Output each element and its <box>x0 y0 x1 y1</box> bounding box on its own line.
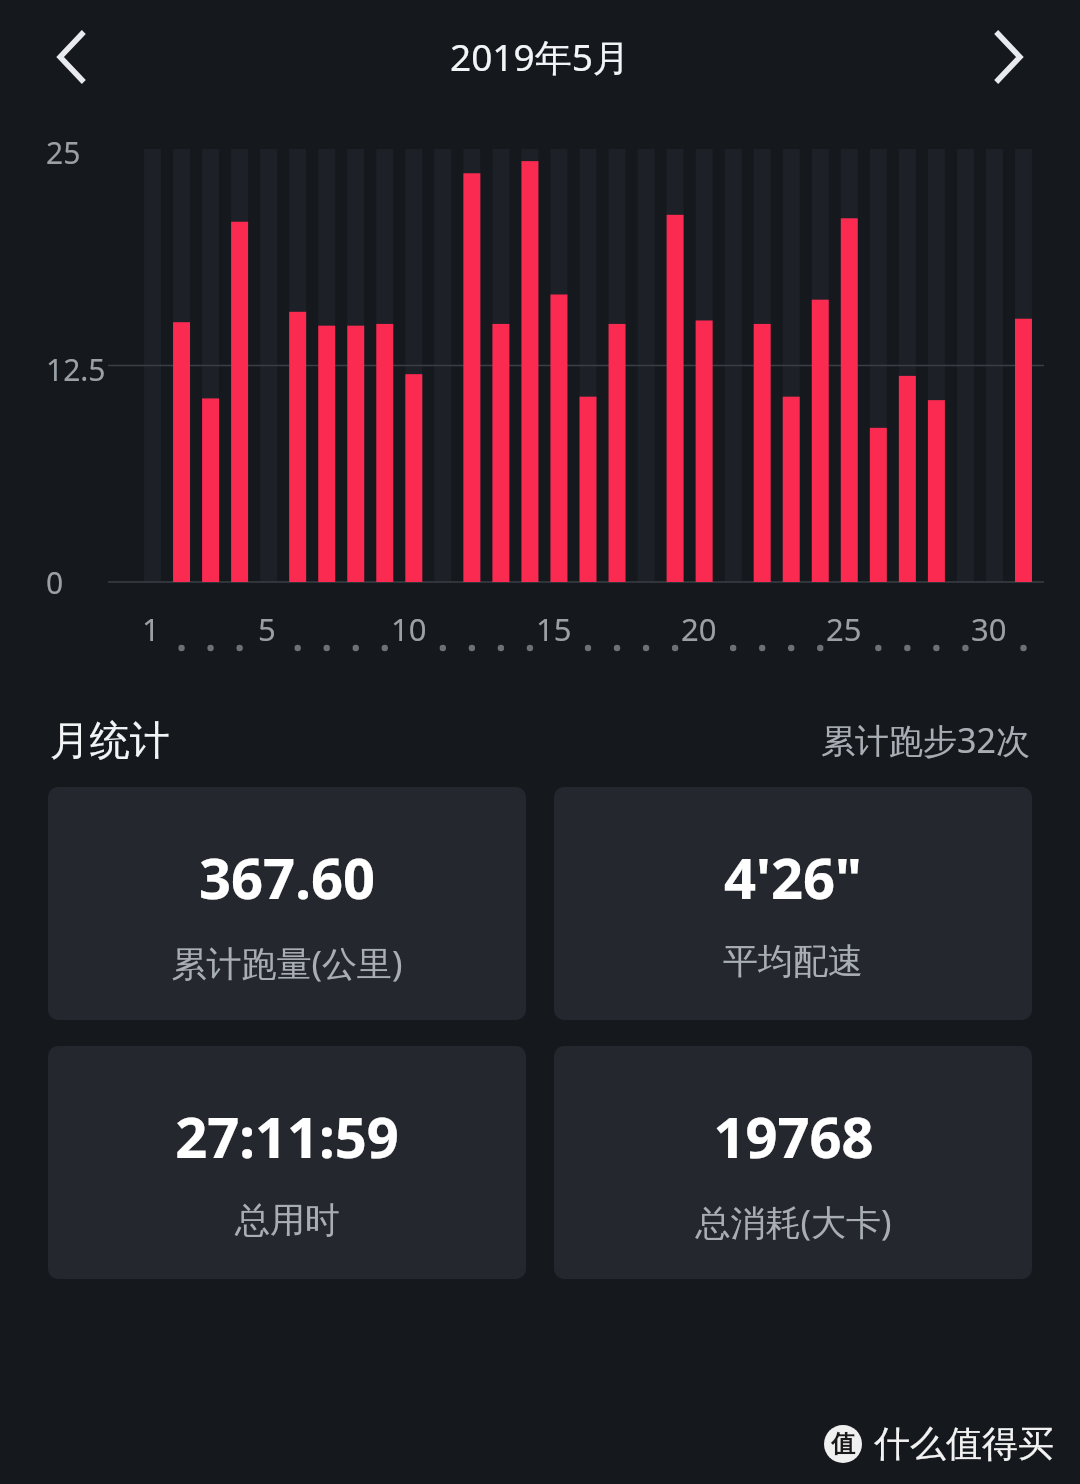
staticText: 25 <box>46 132 81 173</box>
staticText: 总消耗(大卡) <box>695 1198 892 1246</box>
staticText: 19768 <box>713 1098 874 1174</box>
button[interactable]: 367.60 <box>48 787 526 1020</box>
staticText: 10 <box>391 608 427 650</box>
staticText: 累计跑量(公里) <box>171 939 403 987</box>
staticText: 什么值得买 <box>874 1421 1054 1466</box>
staticText: 值 <box>831 1429 855 1459</box>
staticText: 30 <box>971 608 1007 650</box>
staticText: 1 <box>142 608 160 650</box>
staticText: 0 <box>46 562 64 603</box>
staticText: 4'26" <box>724 839 862 915</box>
staticText: 20 <box>681 608 717 650</box>
staticText: 27:11:59 <box>175 1098 399 1174</box>
button[interactable]: 4'26" <box>554 787 1032 1020</box>
staticText: 15 <box>536 608 572 650</box>
staticText: 月统计 <box>50 715 170 765</box>
staticText: 12.5 <box>46 349 106 390</box>
staticText: 2019年5月 <box>450 31 630 82</box>
staticText: 平均配速 <box>723 939 863 983</box>
button[interactable]: Previous month <box>36 22 106 92</box>
staticText: 5 <box>258 608 276 650</box>
staticText: 总用时 <box>235 1198 340 1242</box>
button[interactable]: Next month <box>974 22 1044 92</box>
button[interactable]: 19768 <box>554 1046 1032 1279</box>
staticText: 367.60 <box>199 839 375 915</box>
staticText: 累计跑步32次 <box>821 717 1030 763</box>
button[interactable]: 27:11:59 <box>48 1046 526 1279</box>
staticText: 25 <box>826 608 862 650</box>
